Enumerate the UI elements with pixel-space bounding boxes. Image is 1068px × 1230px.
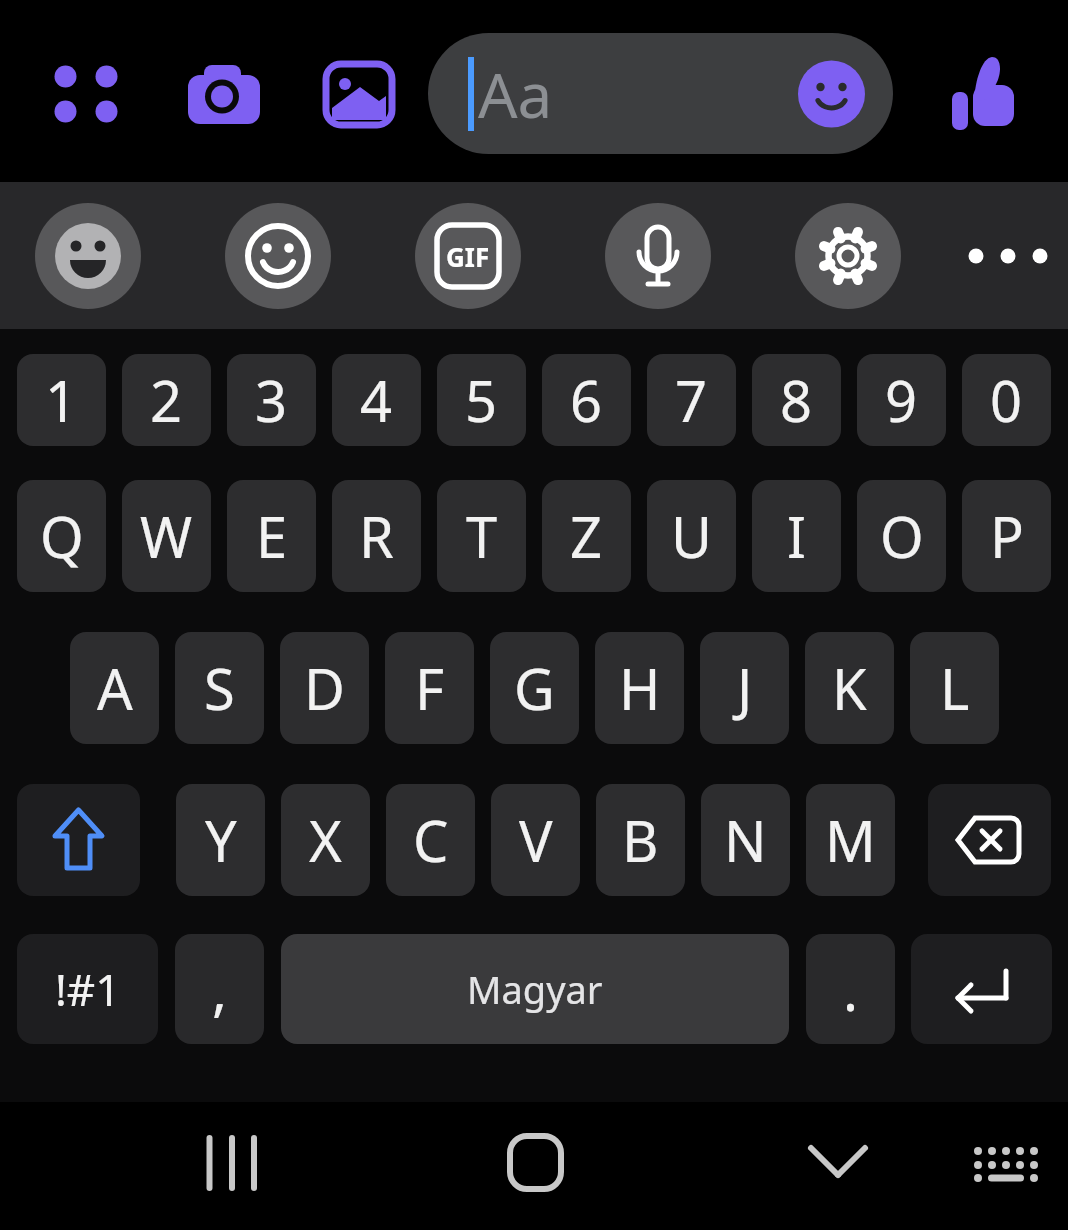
button[interactable]: , (175, 934, 264, 1044)
staticText: M (825, 802, 876, 878)
button[interactable] (225, 203, 331, 309)
button[interactable] (605, 203, 711, 309)
button[interactable]: 5 (437, 354, 526, 446)
staticText: O (880, 498, 924, 574)
staticText: P (990, 498, 1024, 574)
staticText: A (97, 650, 133, 726)
staticText: U (671, 498, 712, 574)
button[interactable]: Magyar (281, 934, 789, 1044)
button[interactable]: F (385, 632, 474, 744)
staticText: T (466, 498, 498, 574)
staticText: D (304, 650, 345, 726)
button[interactable]: O (857, 480, 946, 592)
staticText: 7 (675, 362, 708, 438)
button[interactable]: P (962, 480, 1051, 592)
button[interactable] (35, 203, 141, 309)
button[interactable] (500, 1128, 570, 1198)
button[interactable]: C (386, 784, 475, 896)
button[interactable]: B (596, 784, 685, 896)
staticText: 8 (780, 362, 813, 438)
staticText: Aa (478, 52, 553, 136)
button[interactable]: G (490, 632, 579, 744)
staticText: 2 (150, 362, 183, 438)
button[interactable]: GIF (415, 203, 521, 309)
button[interactable]: Q (17, 480, 106, 592)
button[interactable]: 1 (17, 354, 106, 446)
staticText: I (787, 498, 806, 574)
staticText: !#1 (55, 959, 121, 1019)
staticText: W (140, 498, 193, 574)
button[interactable]: I (752, 480, 841, 592)
button[interactable]: N (701, 784, 790, 896)
button[interactable] (930, 44, 1030, 144)
button[interactable]: R (332, 480, 421, 592)
button[interactable] (36, 44, 136, 144)
button[interactable]: Y (176, 784, 265, 896)
button[interactable] (309, 44, 409, 144)
button[interactable] (17, 784, 140, 896)
button[interactable] (965, 1135, 1045, 1193)
button[interactable] (171, 44, 271, 144)
staticText: 1 (45, 362, 78, 438)
button[interactable]: V (491, 784, 580, 896)
button[interactable]: 9 (857, 354, 946, 446)
staticText: Z (570, 498, 603, 574)
button[interactable] (800, 1128, 876, 1198)
button[interactable]: Aa (428, 33, 893, 154)
staticText: Magyar (467, 963, 603, 1015)
staticText: E (256, 498, 288, 574)
button[interactable]: 0 (962, 354, 1051, 446)
staticText: GIF (446, 239, 490, 274)
staticText: 6 (570, 362, 603, 438)
button[interactable]: E (227, 480, 316, 592)
button[interactable]: H (595, 632, 684, 744)
button[interactable]: 8 (752, 354, 841, 446)
button[interactable]: . (806, 934, 895, 1044)
staticText: , (212, 951, 228, 1027)
button[interactable]: K (805, 632, 894, 744)
button[interactable]: D (280, 632, 369, 744)
staticText: 0 (990, 362, 1023, 438)
staticText: V (519, 802, 553, 878)
staticText: K (832, 650, 867, 726)
button[interactable] (795, 203, 901, 309)
button[interactable]: J (700, 632, 789, 744)
staticText: Q (40, 498, 84, 574)
staticText: N (724, 802, 767, 878)
button[interactable]: 3 (227, 354, 316, 446)
button[interactable]: S (175, 632, 264, 744)
button[interactable] (185, 1135, 280, 1193)
button[interactable]: 6 (542, 354, 631, 446)
button[interactable]: !#1 (17, 934, 158, 1044)
button[interactable] (958, 226, 1058, 286)
button[interactable]: M (806, 784, 895, 896)
button[interactable] (911, 934, 1052, 1044)
staticText: 9 (885, 362, 918, 438)
button[interactable]: 7 (647, 354, 736, 446)
staticText: 4 (360, 362, 393, 438)
staticText: 3 (255, 362, 288, 438)
staticText: Y (205, 802, 237, 878)
staticText: C (413, 802, 449, 878)
staticText: R (359, 498, 394, 574)
staticText: J (737, 650, 753, 726)
staticText: B (622, 802, 659, 878)
button[interactable]: T (437, 480, 526, 592)
staticText: S (204, 650, 235, 726)
button[interactable] (928, 784, 1051, 896)
button[interactable]: Z (542, 480, 631, 592)
button[interactable]: A (70, 632, 159, 744)
button[interactable]: X (281, 784, 370, 896)
staticText: F (415, 650, 445, 726)
button[interactable]: 2 (122, 354, 211, 446)
staticText: X (309, 802, 342, 878)
staticText: L (940, 650, 970, 726)
button[interactable]: L (910, 632, 999, 744)
staticText: H (619, 650, 661, 726)
staticText: G (514, 650, 555, 726)
button[interactable]: U (647, 480, 736, 592)
staticText: . (843, 951, 859, 1027)
button[interactable]: 4 (332, 354, 421, 446)
staticText: 5 (465, 362, 498, 438)
button[interactable]: W (122, 480, 211, 592)
